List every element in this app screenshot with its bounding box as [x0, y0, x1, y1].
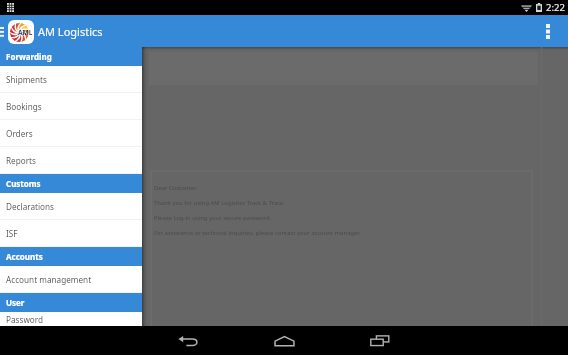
button[interactable]: Declarations: [0, 193, 142, 219]
staticText: Dear Customer:: [154, 184, 198, 192]
button[interactable]: Orders: [0, 120, 142, 146]
button[interactable]: User: [0, 293, 142, 312]
button[interactable]: Home: [264, 326, 304, 355]
button[interactable]: Customs: [0, 174, 142, 193]
staticText: For assistance or technical inquiries, p…: [154, 229, 361, 237]
button[interactable]: Shipments: [0, 66, 142, 92]
staticText: Forwarding: [6, 51, 52, 62]
staticText: Reports: [6, 155, 36, 166]
staticText: Declarations: [6, 201, 55, 212]
button[interactable]: Password: [0, 312, 142, 326]
staticText: User: [6, 297, 25, 308]
button[interactable]: Back: [168, 326, 208, 355]
button[interactable]: Accounts: [0, 247, 142, 266]
staticText: Thank you for using AM Logistics Track &…: [154, 199, 285, 207]
staticText: Account management: [6, 274, 92, 285]
button[interactable]: Reports: [0, 147, 142, 173]
button[interactable]: Account management: [0, 266, 142, 292]
staticText: Bookings: [6, 101, 42, 112]
other: Open navigation drawer: [0, 27, 4, 37]
staticText: Password: [6, 314, 44, 325]
staticText: Please Log-in using your secure password…: [154, 214, 272, 222]
staticText: Shipments: [6, 74, 47, 85]
staticText: Accounts: [6, 251, 43, 262]
staticText: Customs: [6, 178, 41, 189]
staticText: ISF: [6, 228, 18, 239]
staticText: Orders: [6, 128, 33, 139]
button[interactable]: ISF: [0, 220, 142, 246]
staticText: AM Logistics: [38, 24, 103, 39]
button[interactable]: More options: [533, 15, 563, 47]
staticText: AML: [18, 28, 33, 37]
button[interactable]: Bookings: [0, 93, 142, 119]
staticText: 2:22: [546, 1, 565, 14]
button[interactable]: Recent apps: [360, 326, 400, 355]
button[interactable]: Forwarding: [0, 47, 142, 66]
